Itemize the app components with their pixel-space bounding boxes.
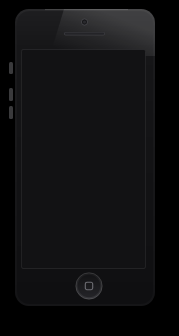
button[interactable]: Phone device xyxy=(0,0,179,336)
